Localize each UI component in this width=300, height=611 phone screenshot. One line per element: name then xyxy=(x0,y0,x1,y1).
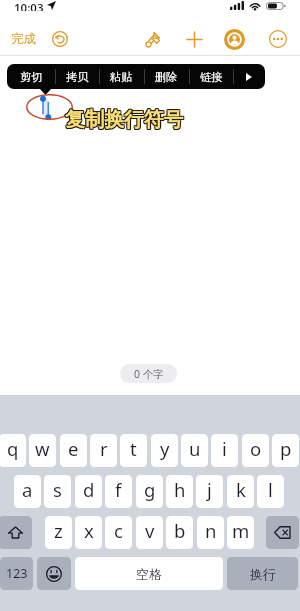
staticText: i xyxy=(222,436,227,461)
staticText: 123 xyxy=(6,565,28,582)
staticText: a xyxy=(22,477,33,502)
staticText: s xyxy=(53,477,62,502)
button[interactable]: Add xyxy=(180,25,208,53)
staticText: k xyxy=(236,477,246,502)
staticText: r xyxy=(100,436,108,461)
staticText: z xyxy=(54,518,63,543)
staticText: l xyxy=(268,477,273,502)
staticText: n xyxy=(205,518,217,543)
button[interactable]: 剪切 xyxy=(7,64,55,89)
button[interactable]: i xyxy=(211,434,238,467)
staticText: 空格 xyxy=(136,566,162,582)
staticText: m xyxy=(232,518,250,543)
button[interactable]: Markup xyxy=(139,25,167,53)
button[interactable]: w xyxy=(29,434,56,467)
staticText: o xyxy=(250,436,262,461)
button[interactable]: j xyxy=(196,475,223,508)
staticText: p xyxy=(280,436,292,461)
button[interactable]: 123 xyxy=(0,557,33,590)
button[interactable]: c xyxy=(105,516,132,549)
button[interactable]: e xyxy=(60,434,87,467)
button[interactable]: u xyxy=(181,434,208,467)
button[interactable]: v xyxy=(136,516,163,549)
staticText: u xyxy=(189,436,201,461)
staticText: d xyxy=(83,477,95,502)
button[interactable]: 删除 xyxy=(144,64,189,89)
button[interactable]: d xyxy=(75,475,102,508)
staticText: y xyxy=(160,436,170,461)
button[interactable]: y xyxy=(151,434,178,467)
button[interactable]: 换行 xyxy=(227,557,298,590)
button[interactable]: More menu items xyxy=(233,64,265,89)
button[interactable]: z xyxy=(45,516,72,549)
button[interactable]: g xyxy=(136,475,163,508)
staticText: 拷贝 xyxy=(66,70,89,84)
staticText: w xyxy=(35,436,50,461)
staticText: v xyxy=(145,518,155,543)
button[interactable]: Backspace xyxy=(266,516,299,549)
button[interactable]: m xyxy=(227,516,254,549)
staticText: j xyxy=(207,477,212,502)
button[interactable]: a xyxy=(14,475,41,508)
button[interactable]: l xyxy=(257,475,284,508)
staticText: e xyxy=(68,436,79,461)
button[interactable]: More xyxy=(264,25,292,53)
staticText: 剪切 xyxy=(20,70,43,84)
button[interactable]: q xyxy=(0,434,26,467)
button[interactable]: f xyxy=(105,475,132,508)
staticText: t xyxy=(130,436,137,461)
button[interactable]: Account xyxy=(220,25,248,53)
staticText: 10:03 xyxy=(14,0,44,11)
button[interactable]: x xyxy=(75,516,102,549)
staticText: b xyxy=(174,518,186,543)
button[interactable]: h xyxy=(166,475,193,508)
button[interactable]: b xyxy=(166,516,193,549)
button[interactable]: Undo xyxy=(46,25,74,53)
button[interactable]: Shift xyxy=(0,516,32,549)
staticText: c xyxy=(114,518,123,543)
staticText: x xyxy=(84,518,94,543)
button[interactable]: k xyxy=(227,475,254,508)
staticText: 换行 xyxy=(250,566,276,582)
button[interactable]: 粘贴 xyxy=(99,64,144,89)
button[interactable]: o xyxy=(242,434,269,467)
button[interactable]: t xyxy=(120,434,147,467)
staticText: q xyxy=(7,436,19,461)
button[interactable]: p xyxy=(272,434,299,467)
button[interactable]: s xyxy=(44,475,71,508)
button[interactable]: 拷贝 xyxy=(55,64,99,89)
staticText: g xyxy=(144,477,156,502)
staticText: 完成 xyxy=(11,31,36,47)
staticText: 链接 xyxy=(200,70,223,84)
button[interactable]: n xyxy=(197,516,224,549)
staticText: h xyxy=(174,477,186,502)
button[interactable]: 完成 xyxy=(5,26,42,52)
staticText: 粘贴 xyxy=(110,70,133,84)
staticText: f xyxy=(115,477,122,502)
staticText: 0 个字 xyxy=(134,367,164,381)
button[interactable]: r xyxy=(90,434,117,467)
button[interactable]: 链接 xyxy=(189,64,233,89)
button[interactable]: 空格 xyxy=(75,557,223,590)
button[interactable]: Emoji xyxy=(37,557,71,590)
staticText: 删除 xyxy=(155,70,178,84)
